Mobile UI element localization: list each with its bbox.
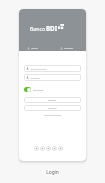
staticText: Empresarial [64, 47, 73, 49]
button[interactable]: Twitter [52, 146, 57, 151]
staticText: Ingresar [48, 99, 57, 102]
staticText: Login [0, 169, 105, 176]
staticText: Banco [30, 25, 46, 32]
button[interactable]: Instagram [58, 146, 63, 151]
button[interactable]: Empresarial [60, 45, 73, 51]
staticText: Personal [31, 47, 38, 49]
staticText: Nombre de usuario [30, 68, 47, 70]
button[interactable]: Facebook [40, 146, 45, 151]
button[interactable]: Cancelar [24, 105, 81, 111]
button[interactable]: Recordarme [24, 87, 44, 92]
button[interactable]: Política privacidad [24, 114, 81, 117]
button[interactable]: Nombre de usuario [24, 65, 81, 72]
button[interactable]: Contraseña [24, 74, 81, 81]
staticText: Cancelar [48, 107, 57, 110]
button[interactable]: Ingresar [24, 97, 81, 103]
button[interactable]: Phone [46, 146, 51, 151]
staticText: Contraseña [30, 77, 40, 79]
staticText: BDI [46, 24, 58, 32]
button[interactable]: Personal [27, 45, 38, 51]
button[interactable]: Email [34, 146, 39, 151]
staticText: Recordarme [33, 89, 44, 91]
